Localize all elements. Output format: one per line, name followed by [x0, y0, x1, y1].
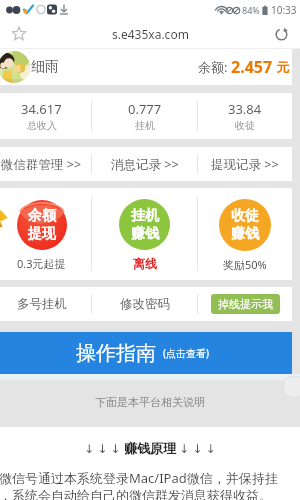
- button[interactable]: 0.777: [92, 93, 197, 139]
- staticText: 离线: [133, 256, 157, 271]
- staticText: 掉线提示我: [218, 297, 273, 311]
- staticText: 赚钱: [231, 225, 259, 243]
- staticText: 细雨: [31, 58, 59, 76]
- staticText: 元: [273, 58, 290, 76]
- staticText: (点击查看): [163, 346, 209, 360]
- staticText: 操作指南: [76, 341, 156, 366]
- button[interactable]: 余额: [0, 188, 91, 280]
- staticText: 赚钱原理: [124, 440, 176, 456]
- staticText: 提现记录 >>: [211, 156, 279, 173]
- staticText: 修改密码: [120, 296, 170, 312]
- button[interactable]: 提现记录 >>: [198, 147, 292, 181]
- staticText: 收徒: [235, 119, 255, 132]
- staticText: 34.617: [21, 100, 62, 118]
- button[interactable]: 收徒: [198, 188, 292, 280]
- staticText: 奖励50%: [223, 257, 267, 272]
- staticText: 多号挂机: [17, 296, 67, 312]
- staticText: 消息记录 >>: [111, 156, 179, 173]
- staticText: 的微信号通过本系统登录Mac/IPad微信，并保持挂机，系统会自动给自己的微信群…: [0, 469, 286, 500]
- button[interactable]: 34.617: [0, 93, 91, 139]
- staticText: 总收入: [27, 119, 57, 132]
- staticText: 84%: [242, 4, 260, 16]
- staticText: ↓ ↓ ↓: [84, 440, 124, 456]
- button[interactable]: 33.84: [198, 93, 292, 139]
- button[interactable]: 消息记录 >>: [92, 147, 197, 181]
- button[interactable]: 操作指南: [0, 332, 292, 374]
- staticText: 提现: [28, 225, 56, 243]
- button[interactable]: 掉线提示我: [211, 294, 280, 314]
- button[interactable]: Bookmark: [8, 23, 30, 45]
- button[interactable]: 多号挂机: [0, 287, 91, 321]
- staticText: 33.84: [228, 100, 262, 118]
- staticText: s.e435xa.com: [112, 26, 189, 42]
- staticText: 0.777: [128, 100, 162, 118]
- button[interactable]: 细雨: [0, 49, 292, 85]
- staticText: 10:33: [271, 3, 297, 17]
- staticText: 2.457: [231, 56, 273, 78]
- staticText: 赚钱: [131, 225, 159, 243]
- button[interactable]: Refresh: [270, 23, 292, 45]
- staticText: 余额: [28, 207, 56, 225]
- staticText: 下面是本平台相关说明: [95, 395, 205, 409]
- staticText: 收徒: [231, 207, 259, 225]
- staticText: ↓ ↓ ↓: [176, 440, 216, 456]
- button[interactable]: 修改密码: [92, 287, 197, 321]
- staticText: 挂机: [131, 207, 159, 225]
- button[interactable]: 微信群管理 >>: [0, 147, 91, 181]
- staticText: 挂机: [135, 119, 155, 132]
- staticText: 余额:: [198, 58, 231, 76]
- button[interactable]: 挂机: [92, 188, 197, 280]
- staticText: 微信群管理 >>: [1, 156, 82, 173]
- staticText: 0.3元起提: [17, 256, 66, 271]
